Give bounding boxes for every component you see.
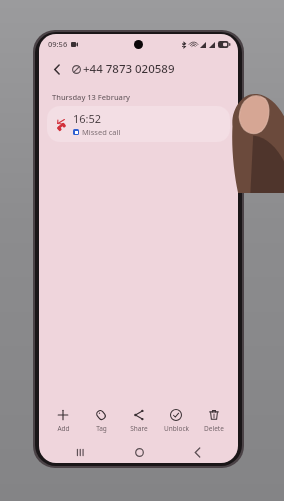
staticText: 09:56 — [48, 39, 68, 49]
staticText: 16:52 — [73, 111, 102, 126]
staticText: +44 7873 020589 — [83, 61, 175, 77]
button[interactable]: Back — [180, 442, 214, 462]
staticText: Thursday 13 February — [52, 92, 131, 102]
button[interactable]: Recent apps — [63, 442, 97, 462]
staticText: Unblock — [164, 424, 189, 433]
staticText: Share — [130, 424, 148, 433]
staticText: Missed call — [82, 127, 121, 137]
button[interactable]: Unblock — [158, 406, 194, 436]
button[interactable]: 16:52 — [47, 106, 230, 142]
button[interactable]: Share — [121, 406, 157, 436]
button[interactable]: Home — [122, 442, 156, 462]
staticText: Tag — [96, 424, 107, 433]
button[interactable]: Tag — [83, 406, 119, 436]
button[interactable]: Back — [46, 58, 68, 80]
staticText: Delete — [204, 424, 224, 433]
button[interactable]: Add — [45, 406, 81, 436]
button[interactable]: Delete — [196, 406, 232, 436]
staticText: Add — [57, 424, 70, 433]
